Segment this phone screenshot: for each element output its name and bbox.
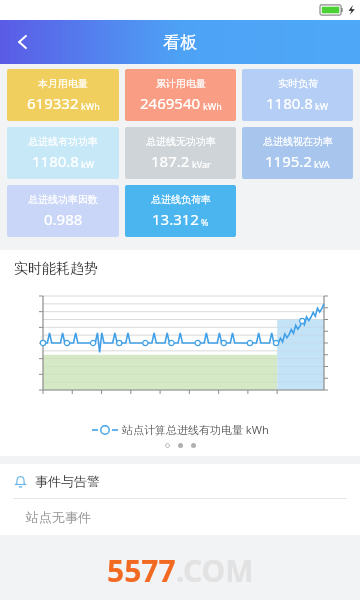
staticText: 5577 [107,550,176,591]
staticText: 总进线视在功率 [263,135,333,148]
button[interactable]: 本月用电量 [7,69,119,121]
staticText: % [201,216,209,228]
staticText: kVA [314,158,330,170]
button[interactable]: Back [0,20,46,64]
button[interactable]: Energy trend chart [0,290,360,418]
staticText: .COM [176,550,254,591]
staticText: 187.2 [151,151,190,171]
staticText: 1195.2 [265,151,312,171]
staticText: 总进线负荷率 [151,193,211,206]
staticText: 13.312 [152,209,199,229]
button[interactable]: 事件与告警 [0,464,360,498]
button[interactable]: 总进线功率因数 [7,185,119,237]
button[interactable]: 站点无事件 [0,499,360,535]
staticText: kWh [81,100,100,112]
staticText: 1180.8 [32,151,79,171]
staticText: 实时能耗趋势 [14,260,98,278]
staticText: kW [81,158,95,170]
staticText: 累计用电量 [156,77,206,90]
staticText: 0.988 [44,209,83,229]
staticText: 619332 [27,93,79,113]
staticText: 1180.8 [266,93,313,113]
staticText: kWh [203,100,222,112]
button[interactable]: 总进线负荷率 [125,185,236,237]
button[interactable]: 总进线视在功率 [242,127,353,179]
staticText: kW [315,100,329,112]
staticText: kVar [192,158,211,170]
staticText: 2469540 [140,93,201,113]
staticText: 事件与告警 [35,473,100,489]
staticText: 实时负荷 [278,77,318,90]
staticText: 站点计算总进线有功电量 kWh [122,422,269,437]
button[interactable]: 实时负荷 [242,69,353,121]
staticText: 站点无事件 [26,509,91,525]
button[interactable]: 总进线无功功率 [125,127,236,179]
button[interactable]: 总进线有功功率 [7,127,119,179]
staticText: 总进线功率因数 [28,193,98,206]
staticText: 本月用电量 [38,77,88,90]
button[interactable]: 累计用电量 [125,69,236,121]
staticText: 总进线无功功率 [146,135,216,148]
staticText: 总进线有功功率 [28,135,98,148]
staticText: 看板 [163,32,197,53]
